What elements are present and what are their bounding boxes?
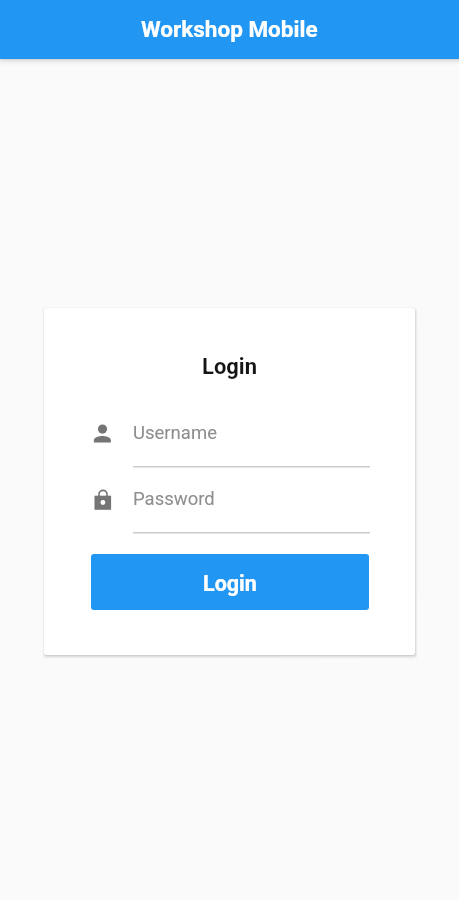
staticText: Login [44,354,415,380]
button[interactable]: Login [91,554,369,610]
staticText: Login [203,571,257,596]
button[interactable]: Password [88,484,372,535]
button[interactable]: Username [88,418,372,469]
staticText: Username [133,422,217,444]
staticText: Password [133,488,215,510]
staticText: Workshop Mobile [141,16,318,42]
